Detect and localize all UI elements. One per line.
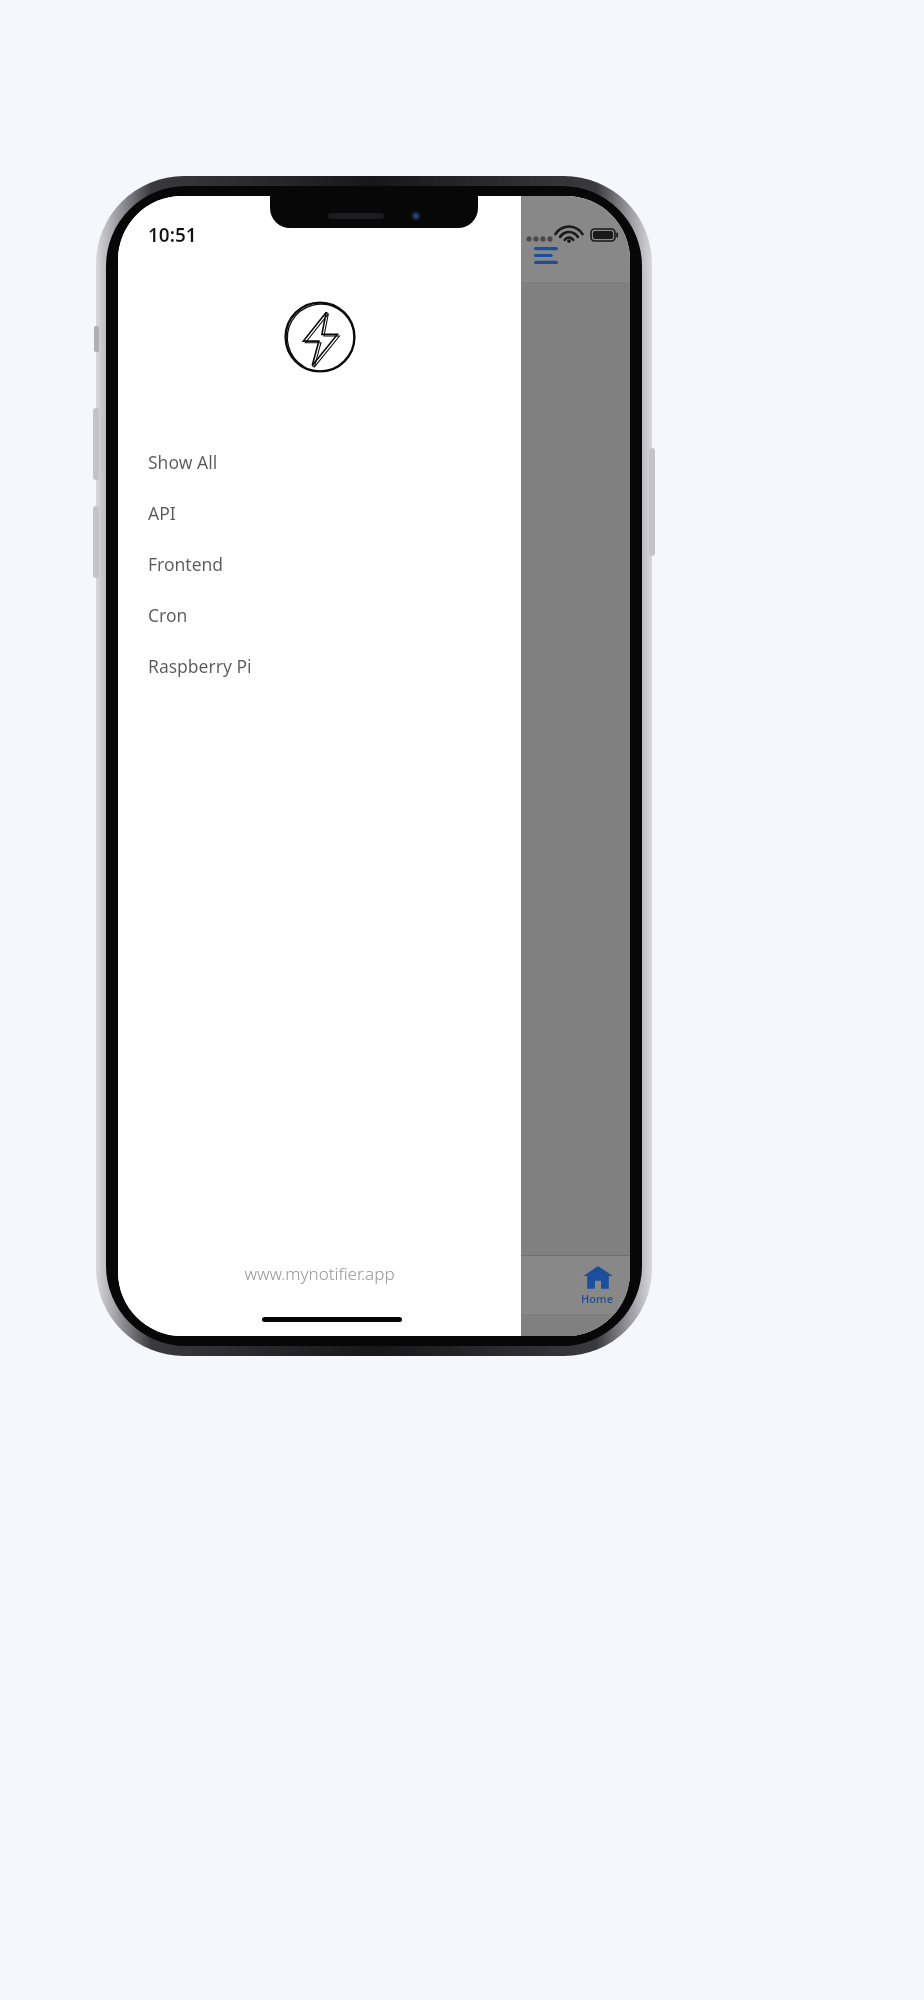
button[interactable]: Show All [118, 436, 521, 487]
button[interactable]: Frontend [118, 538, 521, 589]
button[interactable]: API [118, 487, 521, 538]
button[interactable]: Raspberry Pi [118, 640, 521, 691]
button[interactable]: www.mynotifier.app [244, 1262, 395, 1285]
button[interactable]: Home [521, 1256, 630, 1314]
staticText: Home [581, 1291, 614, 1306]
staticText: Cron [148, 603, 188, 627]
button[interactable]: Cron [118, 589, 521, 640]
staticText: Show All [148, 450, 218, 474]
staticText: API [148, 501, 176, 525]
staticText: Raspberry Pi [148, 654, 252, 678]
staticText: Frontend [148, 552, 224, 576]
staticText: 10:51 [148, 222, 197, 248]
button[interactable]: Open menu [525, 234, 567, 276]
